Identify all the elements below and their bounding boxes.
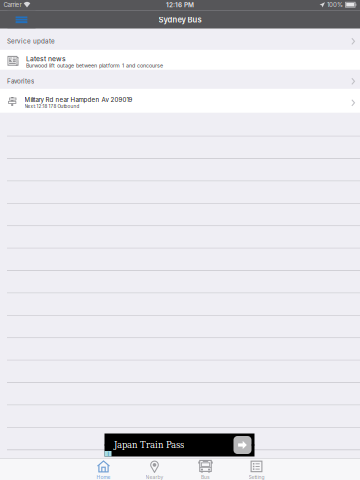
button[interactable]: Menu [7, 11, 35, 29]
button[interactable]: Japan Train Pass advertisement [104, 433, 254, 456]
staticText: Home [96, 474, 110, 480]
staticText: Latest news [26, 55, 66, 63]
staticText: Sydney Bus [158, 15, 201, 24]
button[interactable]: Setting [231, 459, 282, 480]
staticText: Bus [201, 474, 210, 480]
staticText: Next: 12:18 178 Outbound [25, 104, 80, 109]
button[interactable]: Home [78, 459, 129, 480]
button[interactable]: Latest news [0, 50, 360, 70]
button[interactable]: Nearby [129, 459, 180, 480]
staticText: Nearby [145, 474, 163, 480]
staticText: Burwood lift outage between platform 1 a… [26, 62, 163, 69]
staticText: Setting [248, 474, 264, 480]
staticText: Service update [7, 37, 55, 45]
staticText: Carrier [3, 1, 21, 8]
button[interactable]: Bus [180, 459, 231, 480]
staticText: Military Rd near Hampden Av 209019 [25, 96, 133, 103]
button[interactable]: Favorites [0, 70, 360, 89]
button[interactable]: Military Rd near Hampden Av 209019 [0, 89, 360, 113]
staticText: 100% [327, 1, 343, 8]
staticText: Japan Train Pass [114, 440, 184, 450]
staticText: 12:16 PM [166, 1, 194, 9]
button[interactable]: Service update [0, 29, 360, 50]
staticText: Favorites [7, 77, 34, 85]
